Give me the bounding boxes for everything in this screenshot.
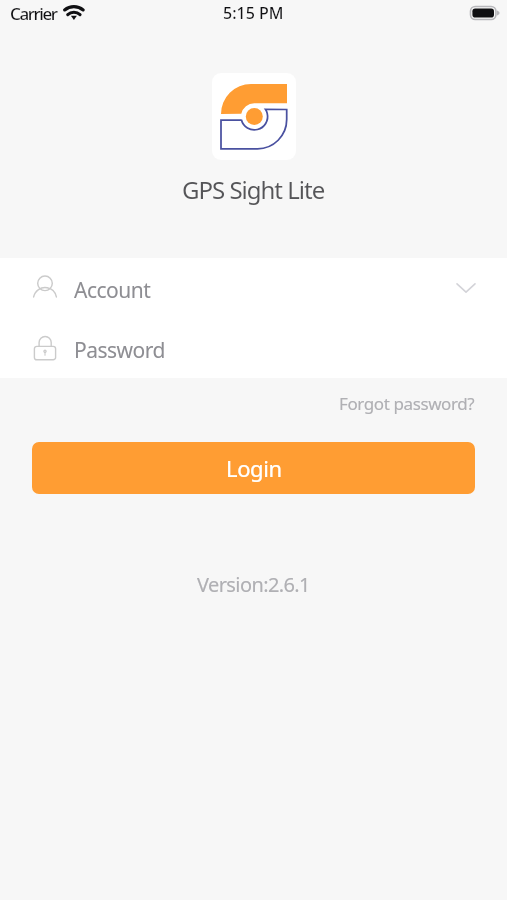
staticText: 5:15 PM [223,2,284,24]
other: Wi-Fi [63,3,85,23]
staticText: Carrier [10,2,57,25]
button[interactable]: Select account [451,273,481,303]
staticText: GPS Sight Lite [182,173,325,206]
button[interactable]: Login [32,442,475,494]
staticText: Login [226,453,282,483]
button[interactable]: Password [0,318,507,378]
button[interactable]: Account [0,258,507,318]
button[interactable]: Forgot password? [315,387,507,420]
staticText: Version:2.6.1 [197,571,310,598]
staticText: Password [74,336,165,365]
staticText: Account [74,276,151,305]
other: Battery full [470,6,500,20]
staticText: Forgot password? [339,392,475,415]
